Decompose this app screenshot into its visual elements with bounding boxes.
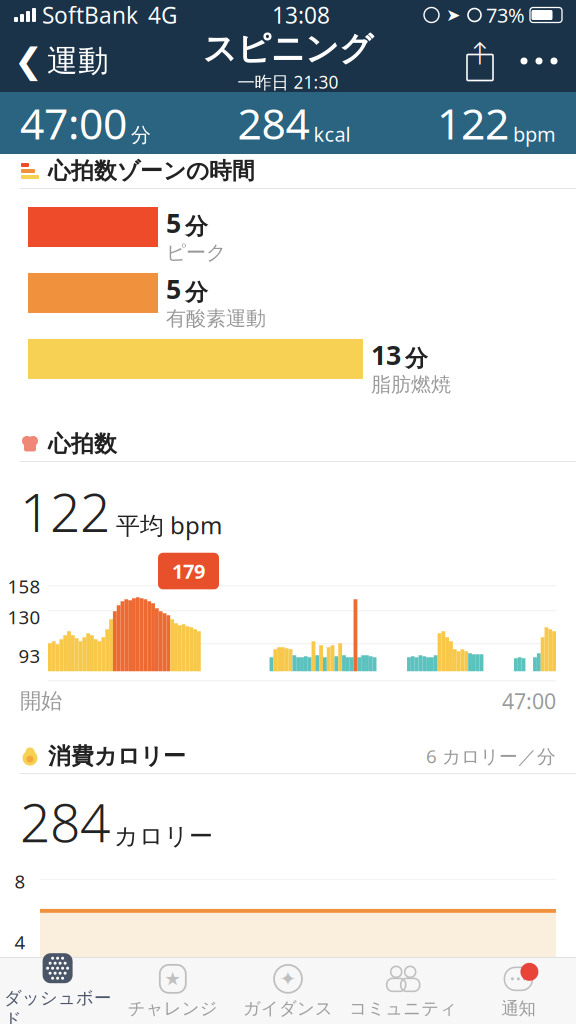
- staticText: 122: [437, 95, 509, 151]
- staticText: bpm: [170, 509, 222, 541]
- staticText: 73%: [486, 2, 525, 28]
- staticText: 93: [18, 643, 40, 668]
- staticText: ➤: [446, 5, 461, 25]
- staticText: 一昨日 21:30: [237, 70, 338, 93]
- staticText: 4: [14, 930, 25, 954]
- staticText: 47:00: [20, 95, 127, 151]
- staticText: ↑: [467, 37, 493, 71]
- button[interactable]: コミュニティ: [346, 958, 461, 1024]
- staticText: 開始: [20, 688, 62, 714]
- staticText: 8: [14, 869, 25, 894]
- staticText: 13:08: [272, 0, 330, 30]
- staticText: bpm: [513, 121, 556, 147]
- staticText: コミュニティ: [349, 998, 457, 1019]
- staticText: SoftBank: [42, 0, 138, 30]
- staticText: ★: [164, 968, 181, 989]
- staticText: 心拍数: [48, 430, 117, 458]
- staticText: 分: [405, 344, 428, 372]
- staticText: 47:00: [502, 687, 556, 715]
- staticText: 心拍数ゾーンの時間: [48, 157, 255, 185]
- button[interactable]: ダッシュボード: [0, 958, 115, 1024]
- staticText: 通知: [501, 998, 535, 1019]
- staticText: ガイダンス: [243, 998, 333, 1019]
- staticText: 6 カロリー／分: [426, 744, 556, 768]
- staticText: 4G: [148, 0, 178, 30]
- staticText: kcal: [313, 121, 350, 147]
- button[interactable]: ★: [115, 958, 230, 1024]
- button[interactable]: ✦: [230, 958, 346, 1024]
- staticText: 分: [185, 278, 208, 306]
- staticText: 5: [166, 205, 181, 240]
- staticText: 分: [131, 123, 151, 147]
- staticText: 分: [185, 213, 208, 240]
- staticText: 130: [7, 604, 40, 629]
- staticText: ダッシュボード: [4, 987, 111, 1024]
- staticText: ✦: [279, 967, 296, 990]
- staticText: 284: [20, 786, 110, 857]
- staticText: 有酸素運動: [166, 306, 266, 331]
- staticText: ❮: [14, 41, 43, 81]
- staticText: 5: [166, 271, 181, 306]
- staticText: カロリー: [114, 821, 213, 851]
- button[interactable]: 通知: [461, 958, 576, 1024]
- staticText: 158: [7, 574, 40, 599]
- staticText: 運動: [47, 42, 109, 80]
- button[interactable]: その他: [502, 36, 576, 86]
- button[interactable]: 共有: [458, 36, 502, 86]
- staticText: 平均: [116, 511, 164, 541]
- staticText: ピーク: [166, 240, 226, 265]
- button[interactable]: ❮: [0, 33, 123, 89]
- staticText: 消費カロリー: [48, 742, 186, 770]
- staticText: 122: [20, 476, 110, 547]
- staticText: スピニング: [203, 28, 373, 69]
- staticText: 179: [172, 558, 205, 584]
- staticText: 13: [371, 337, 401, 372]
- staticText: 284: [237, 95, 309, 151]
- staticText: 脂肪燃焼: [371, 372, 451, 397]
- staticText: チャレンジ: [128, 998, 218, 1019]
